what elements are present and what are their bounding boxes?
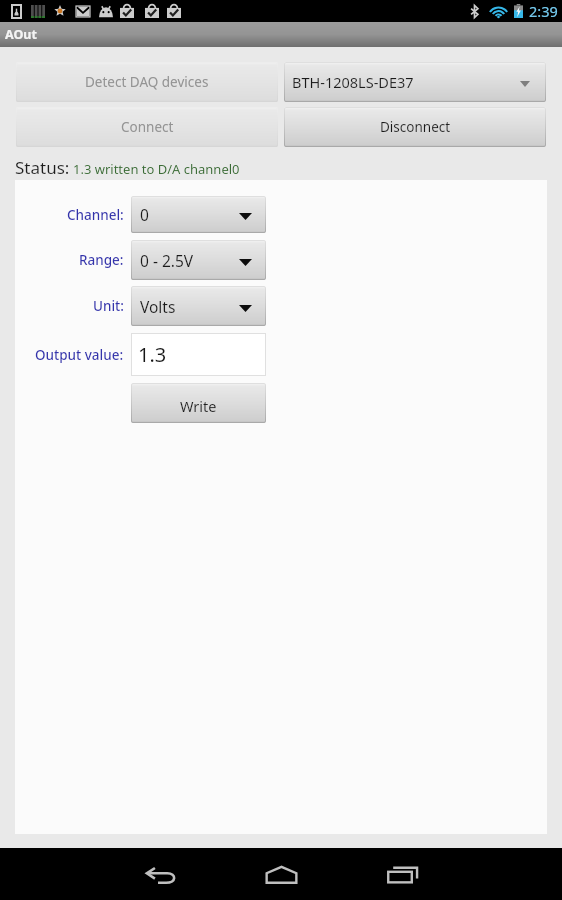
button[interactable]: 0 — [131, 196, 266, 233]
staticText: 0 — [140, 204, 149, 225]
staticText: 1.3 written to D/A channel0 — [73, 160, 240, 178]
button[interactable]: 0 - 2.5V — [131, 240, 266, 280]
button[interactable]: Back — [120, 852, 200, 898]
staticText: Channel: — [67, 206, 124, 224]
staticText: Write — [180, 396, 217, 416]
button[interactable]: Write — [131, 383, 266, 423]
staticText: Unit: — [93, 297, 124, 315]
staticText: Range: — [79, 251, 124, 269]
staticText: Connect — [121, 118, 174, 136]
staticText: 2:39 — [529, 1, 558, 21]
staticText: 1.3 — [138, 341, 167, 368]
staticText: Volts — [140, 296, 176, 317]
staticText: Status: — [15, 156, 70, 179]
staticText: Detect DAQ devices — [85, 73, 209, 91]
button[interactable]: BTH-1208LS-DE37 — [284, 62, 546, 102]
button[interactable]: Connect — [16, 107, 278, 147]
button[interactable]: 1.3 — [131, 333, 266, 376]
staticText: Disconnect — [380, 118, 451, 136]
staticText: 0 - 2.5V — [140, 250, 194, 271]
staticText: Output value: — [35, 346, 124, 364]
staticText: BTH-1208LS-DE37 — [292, 72, 414, 92]
button[interactable]: Disconnect — [284, 107, 546, 147]
staticText: AOut — [5, 26, 37, 43]
button[interactable]: Volts — [131, 286, 266, 326]
button[interactable]: Home — [241, 852, 321, 898]
button[interactable]: Recent apps — [362, 852, 442, 898]
button[interactable]: Detect DAQ devices — [16, 62, 278, 102]
